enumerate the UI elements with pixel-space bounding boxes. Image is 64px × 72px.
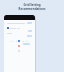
button[interactable] <box>4 15 35 72</box>
staticText: Recommendations <box>0 7 64 11</box>
staticText: Grid Setting <box>0 3 64 7</box>
